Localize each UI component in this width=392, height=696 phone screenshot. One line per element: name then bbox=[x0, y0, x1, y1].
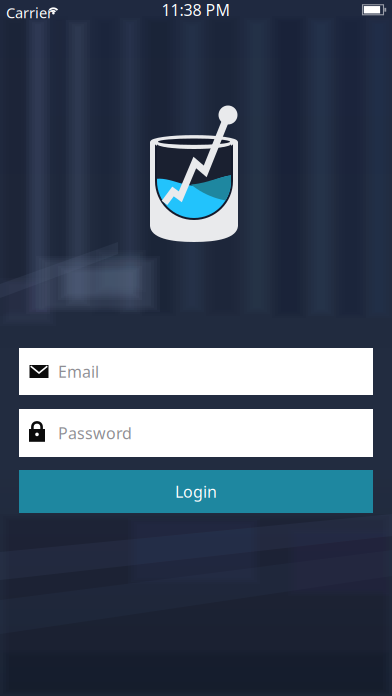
staticText: 11:38 PM bbox=[161, 0, 230, 20]
button[interactable]: Password bbox=[19, 409, 373, 457]
staticText: Carrier bbox=[6, 3, 53, 22]
staticText: Password bbox=[58, 422, 132, 444]
staticText: Login bbox=[175, 481, 217, 502]
button[interactable]: Login bbox=[19, 470, 373, 513]
button[interactable]: Email bbox=[19, 348, 373, 395]
staticText: Email bbox=[58, 361, 99, 382]
